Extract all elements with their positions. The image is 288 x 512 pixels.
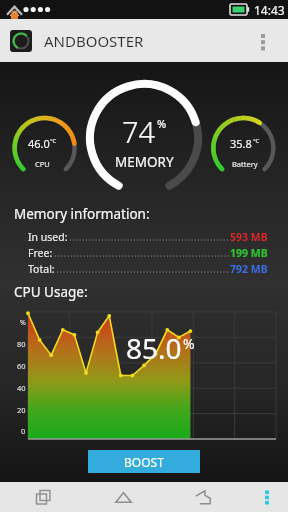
staticText: % [183, 334, 195, 353]
staticText: °C [50, 137, 57, 145]
staticText: 20 [17, 405, 26, 415]
staticText: 14:43 [254, 2, 285, 18]
staticText: In used: [28, 230, 68, 244]
staticText: CPU Usage: [14, 283, 88, 301]
staticText: 46.0 [28, 136, 50, 151]
staticText: 35.8 [230, 136, 252, 151]
button[interactable]: Home [106, 482, 140, 512]
staticText: % [157, 116, 167, 131]
button[interactable]: Back [186, 482, 220, 512]
staticText: 85.0 [126, 329, 182, 367]
staticText: 792 MB [230, 262, 268, 276]
button[interactable]: BOOST [88, 450, 200, 473]
staticText: 60 [17, 361, 26, 371]
button[interactable]: In used: [28, 229, 268, 245]
staticText: BOOST [124, 454, 164, 470]
button[interactable]: Free: [28, 245, 268, 261]
button[interactable]: Recent apps [26, 482, 60, 512]
staticText: Free: [28, 246, 53, 260]
staticText: 40 [17, 383, 26, 393]
staticText: 0 [21, 426, 26, 436]
button[interactable]: Total: [28, 261, 268, 277]
button[interactable]: Menu [254, 484, 280, 510]
staticText: °C [253, 137, 260, 145]
button[interactable]: More options [248, 26, 278, 56]
staticText: CPU [35, 159, 50, 169]
staticText: 593 MB [230, 230, 268, 244]
staticText: 80 [17, 339, 26, 349]
staticText: % [20, 318, 26, 328]
staticText: Total: [28, 262, 55, 276]
staticText: 199 MB [230, 246, 268, 260]
staticText: 74 [122, 112, 156, 151]
staticText: ANDBOOSTER [44, 31, 144, 51]
staticText: Battery [232, 159, 258, 169]
staticText: Memory information: [14, 205, 150, 223]
staticText: MEMORY [115, 153, 174, 171]
